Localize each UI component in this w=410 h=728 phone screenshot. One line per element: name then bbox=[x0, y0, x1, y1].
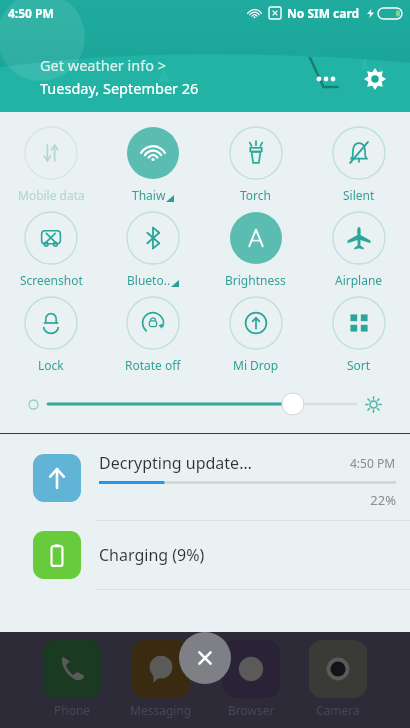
button[interactable]: Thaiw bbox=[102, 126, 204, 203]
staticText: Lock bbox=[38, 357, 64, 373]
button[interactable]: Phone bbox=[43, 640, 101, 718]
button[interactable]: Brightness slider bbox=[28, 387, 382, 421]
staticText: Sort bbox=[347, 357, 371, 373]
button[interactable]: Browser bbox=[222, 640, 280, 718]
staticText: Get weather info > bbox=[40, 55, 167, 75]
button[interactable]: Screenshot bbox=[0, 211, 102, 288]
button[interactable]: Settings bbox=[354, 58, 396, 100]
button[interactable]: More options bbox=[306, 59, 346, 99]
button[interactable]: Rotate off bbox=[102, 296, 204, 373]
staticText: 4:50 PM bbox=[350, 455, 396, 471]
staticText: Airplane bbox=[335, 272, 383, 288]
button[interactable]: Silent bbox=[307, 126, 410, 203]
button[interactable]: Mobile data bbox=[0, 126, 102, 203]
button[interactable]: Torch bbox=[204, 126, 307, 203]
staticText: Rotate off bbox=[125, 357, 181, 373]
staticText: Screenshot bbox=[20, 272, 83, 288]
staticText: Mi Drop bbox=[233, 357, 279, 373]
button[interactable]: Lock bbox=[0, 296, 102, 373]
staticText: Phone bbox=[54, 702, 91, 718]
button[interactable]: Close bbox=[179, 632, 231, 684]
staticText: Decrypting update… bbox=[99, 452, 252, 474]
button[interactable]: Get weather info > bbox=[40, 55, 199, 98]
staticText: Thaiw bbox=[132, 187, 166, 203]
staticText: Camera bbox=[316, 702, 360, 718]
button[interactable]: Blueto.. bbox=[102, 211, 204, 288]
staticText: Charging (9%) bbox=[99, 544, 205, 566]
staticText: 4:50 PM bbox=[8, 5, 54, 21]
button[interactable]: Brightness bbox=[204, 211, 307, 288]
staticText: Blueto.. bbox=[127, 272, 171, 288]
button[interactable]: Airplane bbox=[307, 211, 410, 288]
button[interactable]: Camera bbox=[309, 640, 367, 718]
staticText: Mobile data bbox=[18, 187, 85, 203]
button[interactable]: Charging (9%) bbox=[0, 521, 410, 589]
button[interactable]: Messaging bbox=[130, 640, 192, 718]
staticText: Browser bbox=[228, 702, 275, 718]
button[interactable]: Mi Drop bbox=[204, 296, 307, 373]
staticText: Silent bbox=[343, 187, 375, 203]
button[interactable]: Sort bbox=[307, 296, 410, 373]
staticText: Tuesday, September 26 bbox=[40, 78, 199, 98]
staticText: No SIM card bbox=[287, 5, 360, 21]
staticText: Messaging bbox=[130, 702, 192, 718]
staticText: Brightness bbox=[225, 272, 286, 288]
staticText: 22% bbox=[99, 491, 396, 509]
staticText: Torch bbox=[240, 187, 271, 203]
button[interactable]: Decrypting update… bbox=[0, 446, 410, 520]
